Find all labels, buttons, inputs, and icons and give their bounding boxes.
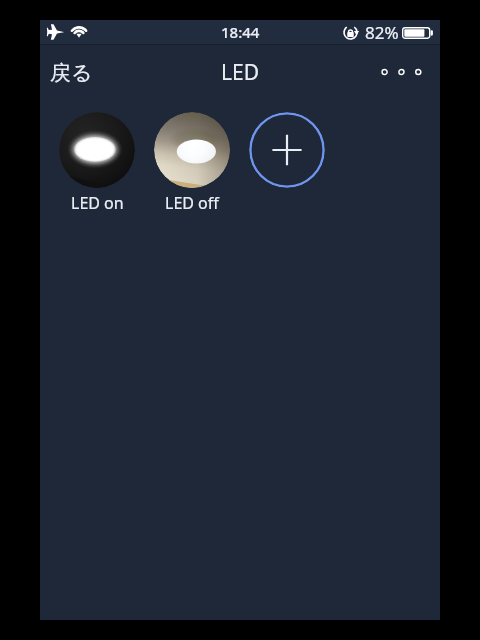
staticText: 戻る <box>50 60 93 86</box>
staticText: 18:44 <box>221 22 260 42</box>
staticText: LED on <box>71 192 124 214</box>
button[interactable]: Add <box>249 112 325 188</box>
button[interactable]: More options <box>371 56 432 88</box>
staticText: LED off <box>165 192 219 214</box>
button[interactable]: LED off <box>154 112 230 188</box>
staticText: 82% <box>365 21 399 44</box>
staticText: LED <box>221 58 260 87</box>
button[interactable]: 戻る <box>42 52 101 94</box>
button[interactable]: LED on <box>59 112 135 188</box>
